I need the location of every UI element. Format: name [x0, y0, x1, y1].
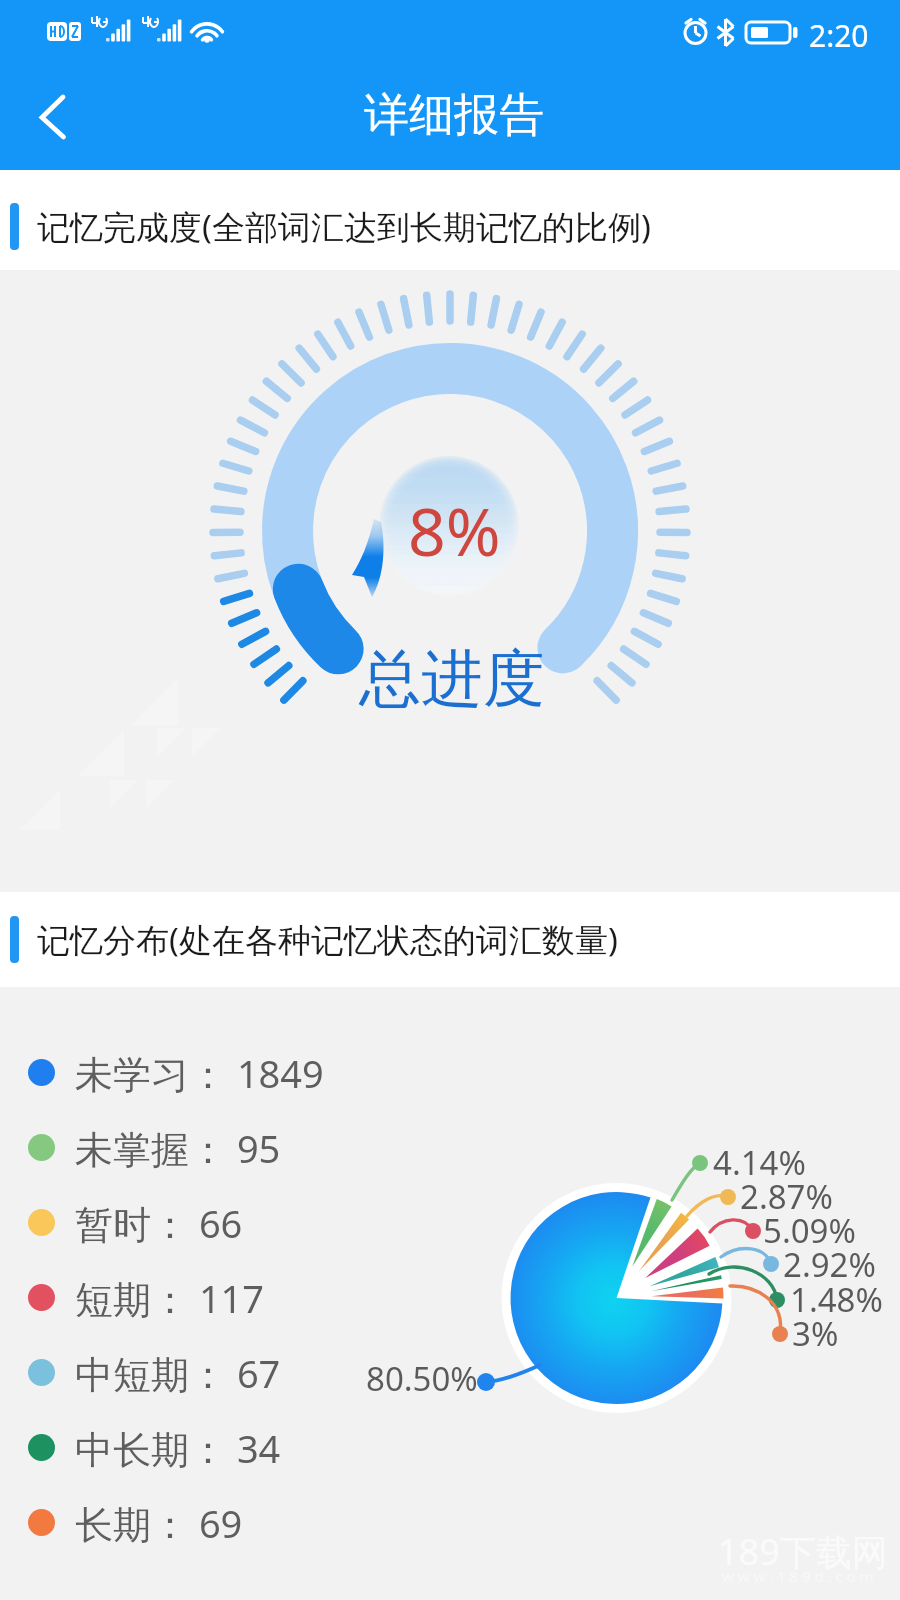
- staticText: 记忆完成度(全部词汇达到长期记忆的比例): [37, 204, 651, 249]
- staticText: 189下载网: [718, 1527, 888, 1576]
- staticText: 2:20: [809, 15, 869, 56]
- staticText: 80.50%: [366, 1356, 478, 1401]
- button[interactable]: 暂时： 66: [28, 1185, 243, 1260]
- staticText: 2.87%: [740, 1174, 833, 1219]
- staticText: 详细报告: [364, 87, 544, 144]
- staticText: 中短期： 67: [75, 1347, 281, 1399]
- staticText: 暂时： 66: [75, 1197, 243, 1249]
- button[interactable]: 中长期： 34: [28, 1410, 281, 1485]
- button[interactable]: Back: [0, 70, 104, 170]
- button[interactable]: 未学习： 1849: [28, 1035, 324, 1110]
- staticText: 8%: [408, 485, 501, 575]
- staticText: 中长期： 34: [75, 1422, 281, 1474]
- staticText: 总进度: [359, 640, 545, 718]
- button[interactable]: 长期： 69: [28, 1485, 243, 1560]
- staticText: 短期： 117: [75, 1272, 265, 1324]
- staticText: 记忆分布(处在各种记忆状态的词汇数量): [37, 917, 618, 962]
- button[interactable]: 中短期： 67: [28, 1335, 281, 1410]
- staticText: 未掌握： 95: [75, 1122, 281, 1174]
- staticText: 3%: [792, 1311, 839, 1356]
- staticText: 2.92%: [783, 1242, 876, 1287]
- staticText: 1.48%: [790, 1277, 883, 1322]
- staticText: 未学习： 1849: [75, 1047, 324, 1099]
- staticText: 4.14%: [713, 1140, 806, 1185]
- staticText: 5.09%: [763, 1208, 856, 1253]
- button[interactable]: 未掌握： 95: [28, 1110, 281, 1185]
- button[interactable]: 短期： 117: [28, 1260, 265, 1335]
- staticText: 长期： 69: [75, 1497, 243, 1549]
